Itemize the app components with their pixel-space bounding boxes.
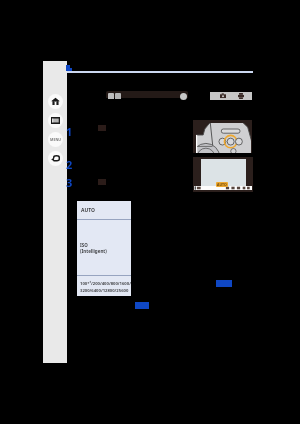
staticText: (Intelligent)	[80, 248, 107, 254]
button[interactable]: Browser tab bar	[106, 91, 188, 98]
button[interactable]: 1	[66, 124, 73, 139]
staticText: MENU	[50, 137, 62, 142]
staticText: 3	[66, 175, 73, 190]
button[interactable]: 2	[66, 157, 73, 172]
staticText: 100*¹/200/400/800/1600/ 3200/6400/12800/…	[80, 281, 131, 293]
button[interactable]: 3	[66, 175, 73, 190]
button[interactable]: Menu	[48, 132, 63, 147]
staticText: AUTO	[81, 207, 95, 214]
staticText: 1	[66, 124, 73, 139]
button[interactable]: Toolbar	[210, 92, 252, 100]
staticText: 2	[66, 157, 73, 172]
staticText: AUTO	[217, 182, 227, 187]
button[interactable]: Home	[48, 94, 63, 109]
staticText: ISO	[80, 242, 88, 248]
button[interactable]: Back	[48, 151, 63, 166]
button[interactable]: Display	[48, 113, 63, 128]
